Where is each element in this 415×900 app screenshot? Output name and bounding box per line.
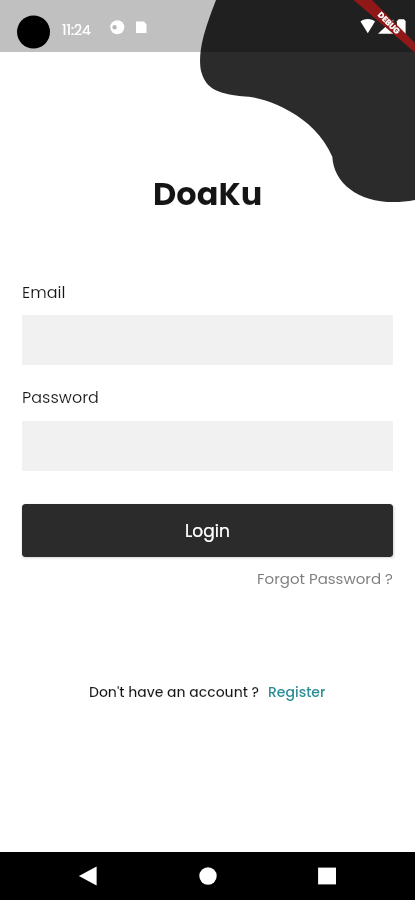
staticText: Login: [185, 519, 230, 543]
staticText: DEBUG: [375, 10, 403, 37]
button[interactable]: Forgot Password ?: [257, 568, 393, 589]
button[interactable]: Register: [268, 682, 326, 702]
staticText: Email: [22, 281, 66, 303]
staticText: Password: [22, 386, 99, 408]
button[interactable]: Back: [52, 852, 124, 900]
staticText: Don't have an account ?: [89, 682, 260, 702]
button[interactable]: Home: [172, 852, 244, 900]
staticText: 11:24: [62, 20, 91, 40]
staticText: DoaKu: [153, 171, 263, 216]
button[interactable]: Login: [22, 504, 393, 557]
button[interactable]: Recent apps: [291, 852, 363, 900]
